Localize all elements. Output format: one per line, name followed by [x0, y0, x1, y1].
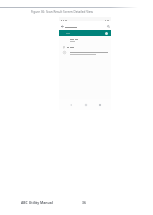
button[interactable]: Search	[106, 24, 110, 28]
button[interactable]	[59, 37, 111, 43]
button[interactable]	[59, 30, 111, 36]
button[interactable]	[59, 49, 111, 56]
staticText: Figure 36: Scan Result Screen Detailed V…	[31, 10, 93, 14]
button[interactable]	[59, 44, 111, 49]
button[interactable]: Home	[83, 102, 88, 107]
button[interactable]: Recent apps	[97, 102, 102, 107]
button[interactable]: Back	[68, 102, 73, 107]
staticText: ABC Utility Manual	[21, 200, 53, 205]
staticText: 36	[82, 200, 86, 205]
button[interactable]: Back	[61, 25, 64, 28]
button[interactable]	[65, 24, 78, 30]
